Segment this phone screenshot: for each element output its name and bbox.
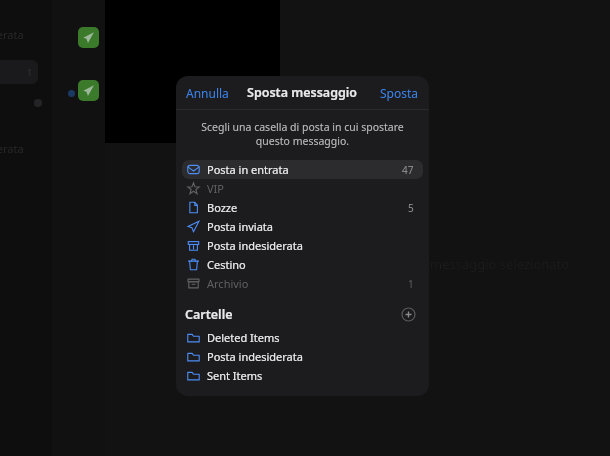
- button[interactable]: Posta in entrata: [182, 160, 423, 179]
- staticText: Cestino: [207, 257, 246, 272]
- staticText: Annulla: [186, 85, 229, 101]
- staticText: 47: [402, 163, 414, 177]
- staticText: Posta inviata: [207, 219, 273, 234]
- button[interactable]: Aggiungi cartella: [398, 304, 418, 324]
- staticText: Posta indesiderata: [207, 349, 303, 364]
- staticText: Archivio: [207, 276, 249, 291]
- button[interactable]: Archivio: [182, 274, 423, 293]
- staticText: Posta in entrata: [207, 162, 289, 177]
- staticText: Deleted Items: [207, 330, 280, 345]
- staticText: Sposta messaggio: [247, 84, 358, 101]
- staticText: Bozze: [207, 200, 238, 215]
- staticText: VIP: [207, 181, 224, 196]
- staticText: derata: [0, 27, 24, 42]
- staticText: Sposta: [380, 85, 419, 101]
- staticText: derata: [0, 141, 24, 156]
- button[interactable]: Sent Items: [182, 366, 423, 385]
- button[interactable]: Annulla: [183, 82, 232, 104]
- staticText: 5: [408, 201, 414, 215]
- staticText: Posta indesiderata: [207, 238, 303, 253]
- staticText: 1: [408, 277, 414, 291]
- button[interactable]: Posta indesiderata: [182, 236, 423, 255]
- button[interactable]: Bozze: [182, 198, 423, 217]
- staticText: 1: [27, 66, 33, 78]
- staticText: Cartelle: [185, 306, 233, 323]
- staticText: Sent Items: [207, 368, 263, 383]
- button[interactable]: Deleted Items: [182, 328, 423, 347]
- button[interactable]: Cestino: [182, 255, 423, 274]
- button[interactable]: VIP: [182, 179, 423, 198]
- button[interactable]: Sposta: [377, 82, 422, 104]
- button[interactable]: Posta inviata: [182, 217, 423, 236]
- button[interactable]: Posta indesiderata: [182, 347, 423, 366]
- staticText: Scegli una casella di posta in cui spost…: [200, 120, 405, 148]
